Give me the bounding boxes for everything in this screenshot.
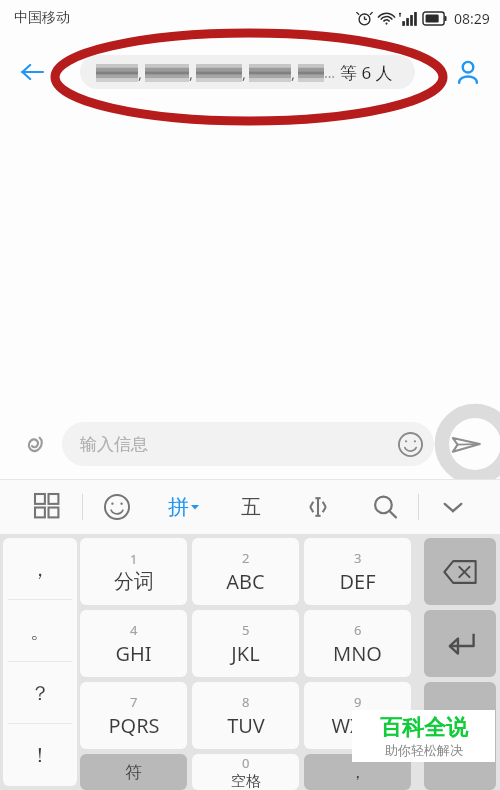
staticText: 3: [354, 549, 362, 567]
staticText: 1: [130, 550, 138, 568]
button[interactable]: ，: [3, 538, 77, 600]
staticText: 空格: [231, 772, 261, 790]
staticText: MNO: [333, 640, 382, 667]
button[interactable]: Back: [8, 48, 56, 96]
staticText: 5: [242, 621, 250, 639]
button[interactable]: 。: [3, 600, 77, 662]
staticText: 2: [242, 549, 250, 567]
button[interactable]: 3: [304, 538, 411, 605]
staticText: ，: [30, 557, 50, 582]
button[interactable]: Backspace: [424, 538, 496, 605]
staticText: 分词: [114, 569, 154, 594]
button[interactable]: Hide keyboard: [419, 480, 486, 534]
button[interactable]: 五: [217, 480, 284, 534]
button[interactable]: 符: [80, 754, 187, 790]
button[interactable]: Attach: [12, 422, 56, 466]
staticText: 助你轻松解决: [385, 742, 463, 758]
staticText: 。: [30, 619, 50, 644]
button[interactable]: 输入信息: [62, 422, 434, 466]
button[interactable]: ，: [304, 754, 411, 790]
staticText: 08:29: [454, 9, 490, 28]
staticText: ，: [349, 762, 366, 783]
staticText: 0: [242, 754, 250, 772]
staticText: 4: [130, 621, 138, 639]
staticText: TUV: [227, 712, 265, 739]
button[interactable]: 2: [192, 538, 299, 605]
button[interactable]: Search: [351, 480, 418, 534]
staticText: DEF: [339, 568, 376, 595]
staticText: GHI: [115, 640, 152, 667]
staticText: 等 6 人: [340, 61, 393, 84]
button[interactable]: 7: [80, 682, 187, 749]
button[interactable]: 5: [192, 610, 299, 677]
button[interactable]: ！: [3, 724, 77, 786]
button[interactable]: 1: [80, 538, 187, 605]
staticText: 输入信息: [80, 434, 148, 455]
button[interactable]: Enter: [424, 610, 496, 677]
staticText: ,: [138, 63, 143, 83]
button[interactable]: 9: [304, 682, 411, 749]
button[interactable]: Emoji: [83, 480, 150, 534]
staticText: ,: [242, 63, 247, 83]
button[interactable]: Cursor: [284, 480, 351, 534]
button[interactable]: 4: [80, 610, 187, 677]
button[interactable]: 拼: [150, 480, 217, 534]
staticText: ,: [189, 63, 194, 83]
staticText: 中国移动: [14, 9, 70, 27]
button[interactable]: Send: [440, 418, 492, 470]
button[interactable]: Send message: [424, 682, 496, 790]
staticText: JKL: [231, 640, 260, 667]
staticText: 6: [354, 621, 362, 639]
staticText: ？: [30, 681, 50, 706]
staticText: WXYZ: [331, 712, 385, 739]
button[interactable]: 0: [192, 754, 299, 790]
button[interactable]: ？: [3, 662, 77, 724]
staticText: ,: [291, 63, 296, 83]
staticText: 拼: [168, 494, 189, 520]
staticText: …: [324, 63, 336, 82]
button[interactable]: 6: [304, 610, 411, 677]
staticText: 8: [242, 693, 250, 711]
button[interactable]: ,: [80, 55, 415, 89]
staticText: 7: [130, 693, 138, 711]
button[interactable]: Emoji: [394, 428, 426, 460]
button[interactable]: 8: [192, 682, 299, 749]
staticText: PQRS: [108, 712, 160, 739]
button[interactable]: Members: [446, 50, 490, 94]
staticText: ！: [30, 743, 50, 768]
button[interactable]: Keyboard layouts: [14, 480, 82, 534]
staticText: 百科全说: [380, 714, 468, 742]
staticText: ABC: [226, 568, 265, 595]
staticText: 符: [125, 762, 142, 783]
staticText: 9: [354, 693, 362, 711]
staticText: 五: [241, 495, 261, 520]
